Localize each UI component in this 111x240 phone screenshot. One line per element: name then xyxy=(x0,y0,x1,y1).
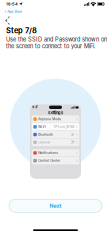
staticText: Wi-Fi xyxy=(38,125,46,129)
staticText: 9:41 xyxy=(32,106,38,109)
staticText: Step 7/8 xyxy=(6,26,37,35)
staticText: TP-Link_8F6B xyxy=(54,125,75,129)
staticText: Airplane Mode xyxy=(38,117,61,121)
staticText: App Store xyxy=(7,9,22,14)
staticText: 16:54 xyxy=(6,2,18,6)
staticText: Control Center xyxy=(38,159,60,163)
staticText: Cellular xyxy=(38,140,50,144)
button[interactable]: Back xyxy=(0,15,111,26)
staticText: On xyxy=(71,133,75,136)
staticText: Next xyxy=(49,203,61,209)
staticText: Settings xyxy=(48,110,63,115)
staticText: Notifications xyxy=(38,151,58,155)
button[interactable]: Next xyxy=(9,199,102,212)
staticText: Off xyxy=(71,141,75,144)
staticText: Bluetooth xyxy=(38,133,53,136)
button[interactable]: App Store xyxy=(0,8,111,15)
staticText: Use the SSID and Password shown on the s… xyxy=(6,36,107,50)
